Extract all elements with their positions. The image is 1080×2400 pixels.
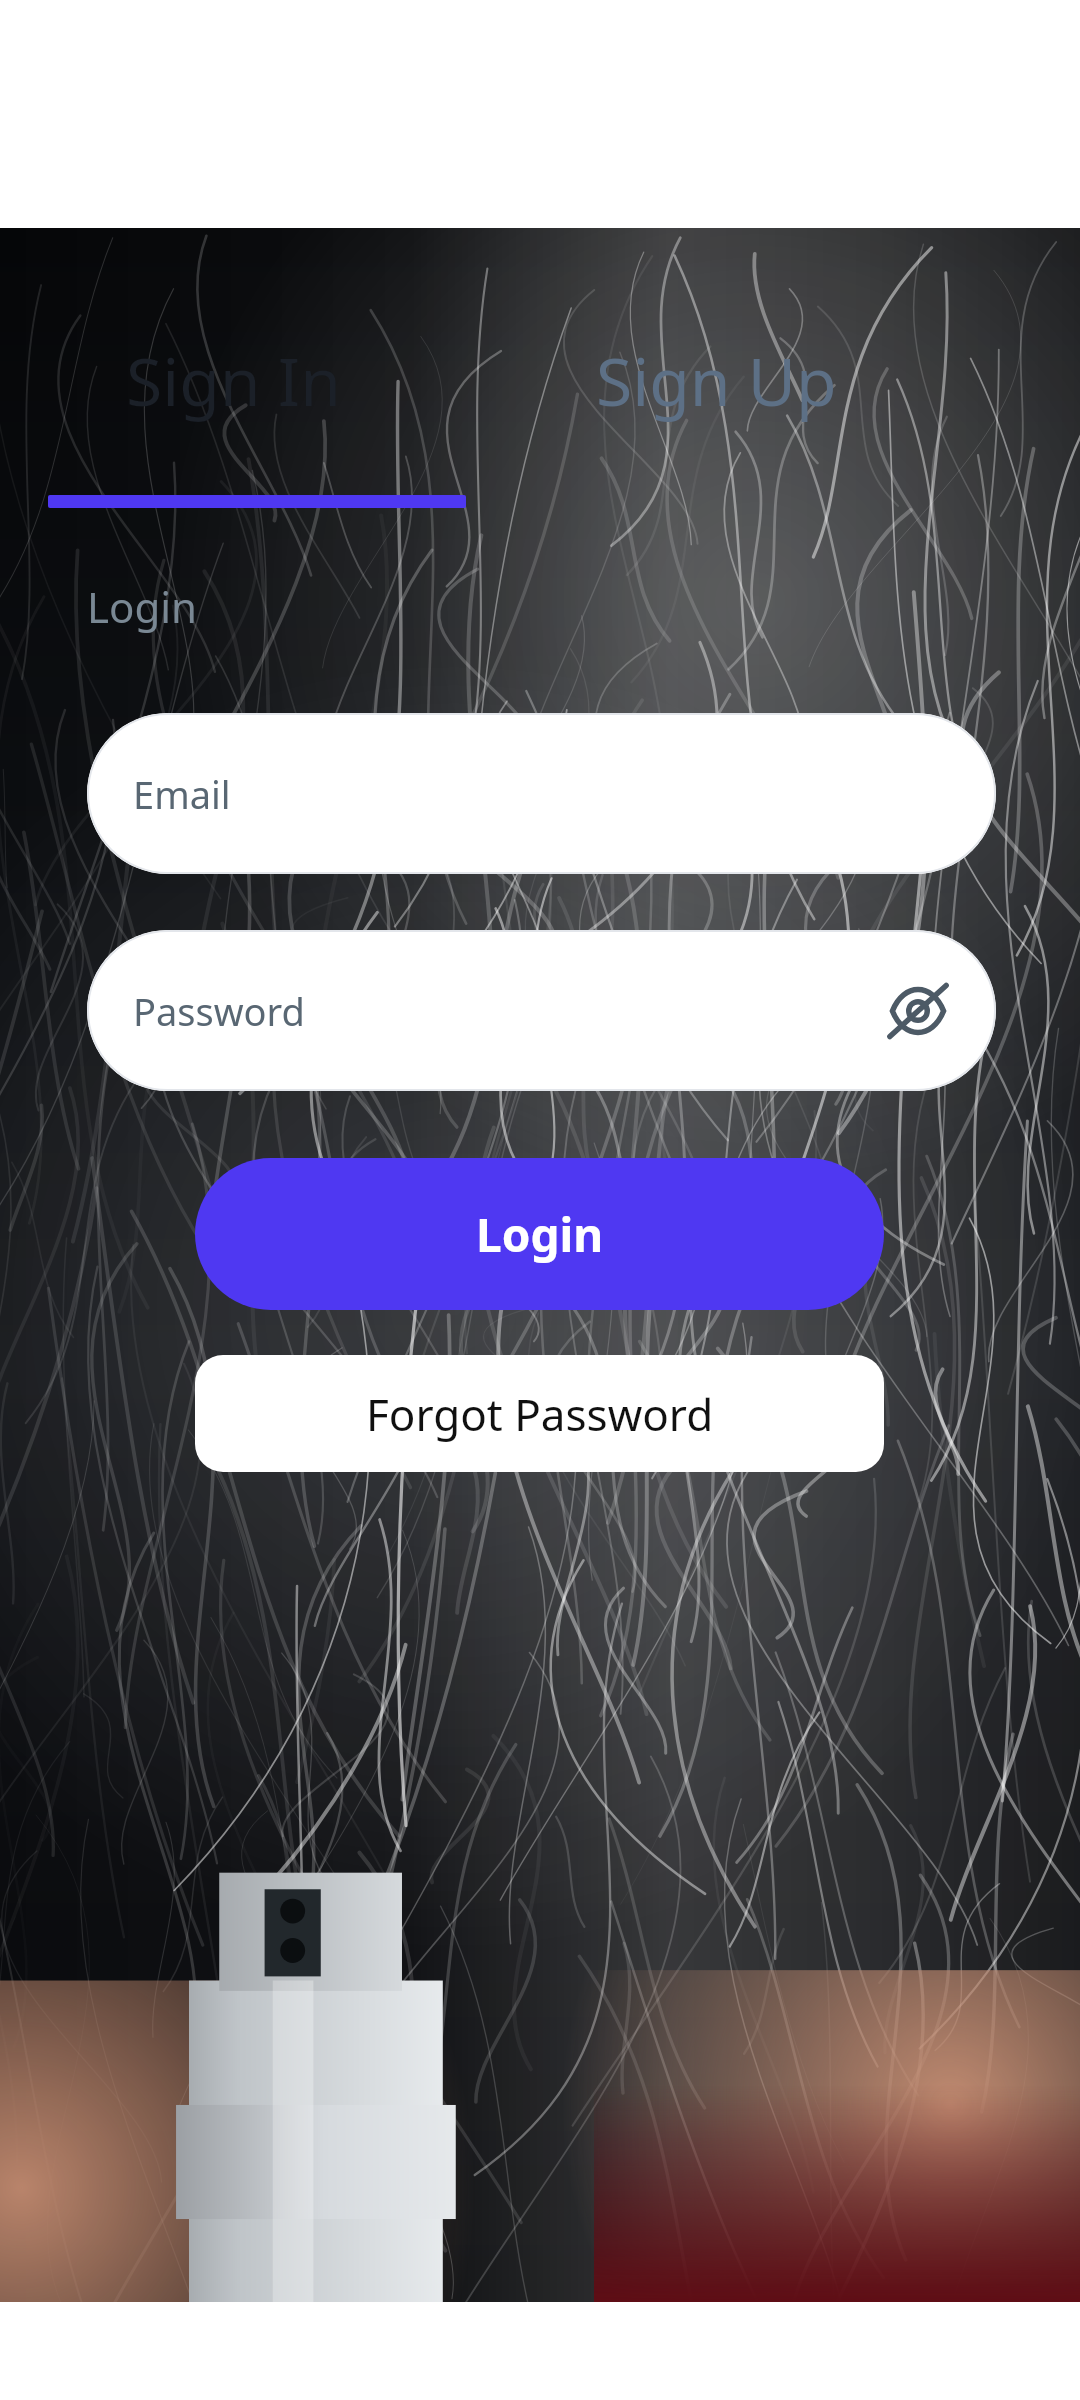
staticText: Forgot Password: [366, 1384, 714, 1444]
staticText: Email: [133, 768, 231, 820]
button[interactable]: Sign Up: [466, 300, 966, 460]
button[interactable]: Forgot Password: [195, 1355, 884, 1472]
staticText: Password: [133, 985, 305, 1037]
staticText: Login: [87, 578, 198, 635]
staticText: Sign In: [126, 335, 341, 425]
button[interactable]: Login: [195, 1158, 884, 1310]
staticText: Login: [476, 1203, 604, 1266]
button[interactable]: Sign In: [0, 300, 466, 460]
staticText: Sign Up: [596, 335, 837, 425]
button[interactable]: Show password: [870, 963, 966, 1059]
button[interactable]: Password: [87, 930, 996, 1091]
button[interactable]: Email: [87, 713, 996, 874]
